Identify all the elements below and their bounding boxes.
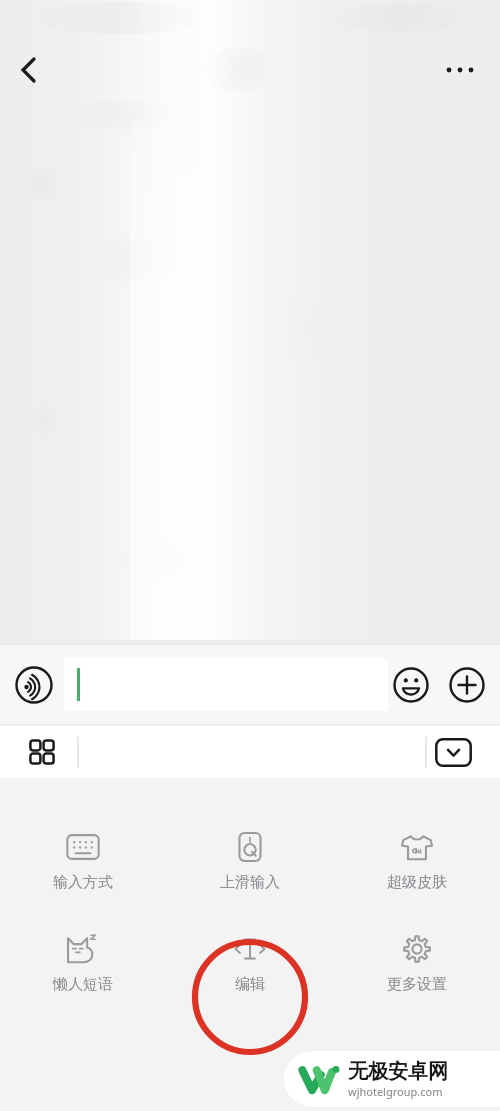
button[interactable]: Hide keyboard bbox=[430, 729, 476, 775]
staticText: 无极安卓网 bbox=[348, 1059, 448, 1084]
staticText: 上滑输入 bbox=[220, 873, 280, 892]
staticText: 懒人短语 bbox=[53, 975, 113, 994]
staticText: 超级皮肤 bbox=[387, 873, 447, 892]
button[interactable]: 输入方式 bbox=[0, 828, 166, 894]
button[interactable]: More options bbox=[438, 48, 482, 92]
button[interactable]: 上滑输入 bbox=[166, 828, 333, 894]
button[interactable]: More functions bbox=[442, 660, 492, 710]
button[interactable]: Back bbox=[6, 48, 50, 92]
staticText: 输入方式 bbox=[53, 873, 113, 892]
staticText: 编辑 bbox=[235, 975, 265, 994]
button[interactable]: Voice input bbox=[8, 659, 60, 711]
button[interactable]: 更多设置 bbox=[333, 930, 500, 996]
button[interactable]: Keyboard panel bbox=[18, 728, 66, 776]
button[interactable]: Emoji bbox=[386, 660, 436, 710]
button[interactable] bbox=[64, 658, 388, 711]
button[interactable]: 懒人短语 bbox=[0, 930, 166, 996]
staticText: 更多设置 bbox=[387, 975, 447, 994]
button[interactable]: 编辑 bbox=[166, 930, 333, 996]
button[interactable]: 超级皮肤 bbox=[333, 828, 500, 894]
staticText: wjhotelgroup.com bbox=[348, 1084, 443, 1099]
